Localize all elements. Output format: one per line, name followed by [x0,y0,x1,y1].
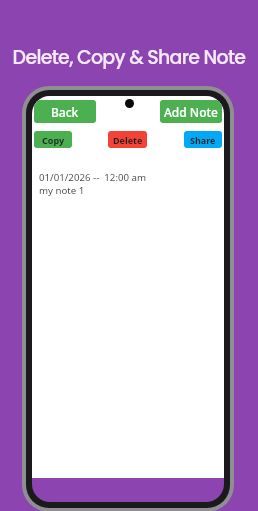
button[interactable]: Copy [34,131,72,148]
button[interactable]: Delete [108,131,147,148]
staticText: Copy [42,134,65,146]
staticText: Delete, Copy & Share Note [0,44,258,71]
staticText: my note 1 [39,184,85,197]
button[interactable]: Back [34,100,96,123]
button[interactable]: Share [184,131,222,148]
staticText: Share [190,134,216,146]
staticText: 01/01/2026 -- 12:00 am [39,171,147,184]
staticText: Add Note [164,104,218,120]
button[interactable]: Add Note [160,100,222,123]
staticText: Back [51,104,79,120]
staticText: Delete [113,134,143,146]
